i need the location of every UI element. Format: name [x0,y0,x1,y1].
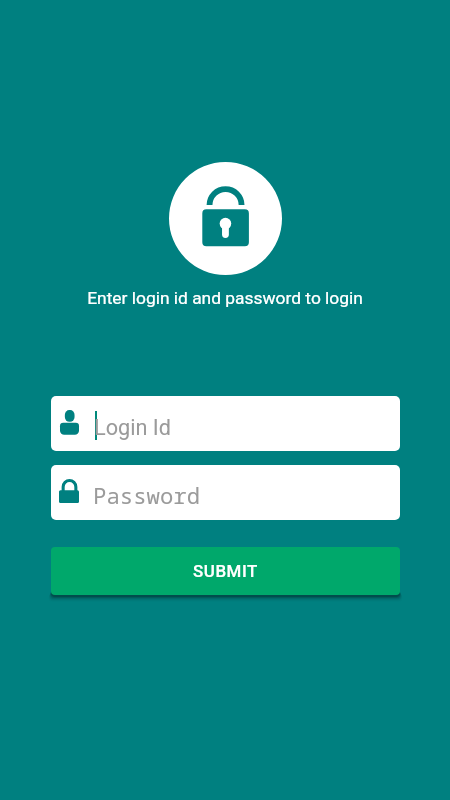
staticText: SUBMIT [193,561,258,581]
button[interactable]: SUBMIT [51,547,400,595]
staticText: Enter login id and password to login [0,288,450,308]
button[interactable]: Password [51,465,400,520]
staticText: Login Id [94,415,171,440]
other: Lock [169,162,282,275]
staticText: Password [93,480,201,510]
button[interactable]: Login Id [51,396,400,451]
